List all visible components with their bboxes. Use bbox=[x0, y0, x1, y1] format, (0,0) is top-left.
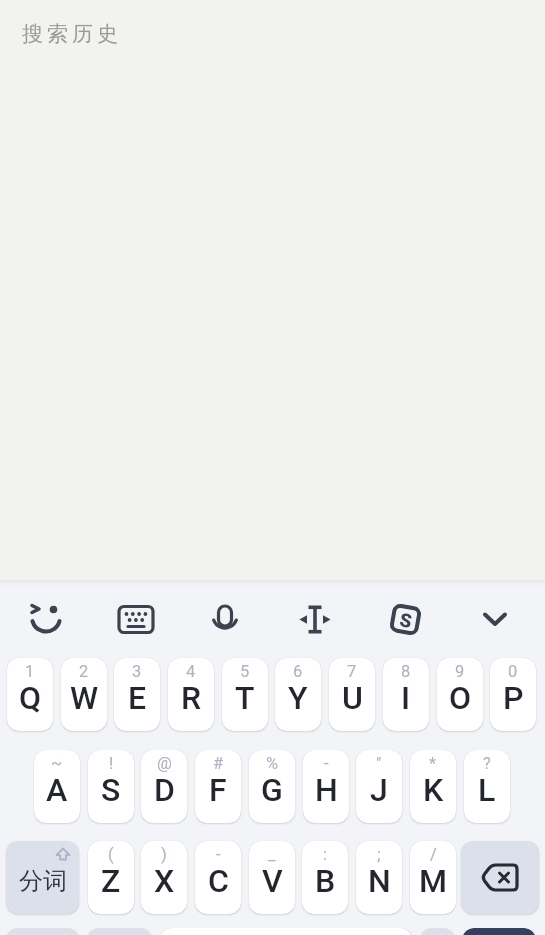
staticText: ? bbox=[483, 754, 491, 773]
button[interactable]: 2 bbox=[61, 658, 107, 731]
button[interactable] bbox=[471, 595, 519, 643]
button[interactable]: 5 bbox=[222, 658, 268, 731]
staticText: # bbox=[213, 754, 224, 773]
button[interactable]: ) bbox=[141, 841, 187, 914]
staticText: 2 bbox=[79, 662, 89, 681]
staticText: @ bbox=[157, 754, 172, 773]
staticText: 3 bbox=[132, 662, 142, 681]
button[interactable] bbox=[87, 928, 152, 935]
button[interactable]: 3 bbox=[114, 658, 160, 731]
staticText: I bbox=[401, 679, 411, 717]
staticText: M bbox=[419, 862, 448, 900]
staticText: Z bbox=[101, 862, 121, 900]
staticText: / bbox=[430, 845, 437, 864]
staticText: 5 bbox=[240, 662, 250, 681]
button[interactable]: S bbox=[381, 595, 429, 643]
button[interactable] bbox=[420, 928, 455, 935]
staticText: 搜索历史 bbox=[20, 21, 120, 47]
button[interactable] bbox=[6, 928, 79, 935]
staticText: ( bbox=[108, 845, 114, 864]
staticText: " bbox=[376, 754, 382, 773]
staticText: P bbox=[503, 679, 524, 717]
button[interactable]: # bbox=[195, 750, 241, 823]
staticText: : bbox=[323, 845, 327, 864]
staticText: K bbox=[423, 771, 444, 809]
staticText: _ bbox=[268, 845, 276, 864]
button[interactable]: 4 bbox=[168, 658, 214, 731]
button[interactable]: : bbox=[302, 841, 348, 914]
staticText: 1 bbox=[25, 662, 35, 681]
staticText: G bbox=[261, 771, 283, 809]
staticText: H bbox=[315, 771, 338, 809]
button[interactable]: ( bbox=[88, 841, 134, 914]
staticText: D bbox=[154, 771, 175, 809]
staticText: 6 bbox=[293, 662, 303, 681]
staticText: C bbox=[208, 862, 229, 900]
staticText: V bbox=[262, 862, 283, 900]
staticText: N bbox=[368, 862, 391, 900]
staticText: Q bbox=[19, 679, 42, 717]
staticText: ! bbox=[109, 754, 114, 773]
staticText: - bbox=[216, 845, 221, 864]
button[interactable]: 分词 bbox=[6, 841, 79, 914]
staticText: A bbox=[46, 771, 68, 809]
button[interactable]: ~ bbox=[34, 750, 80, 823]
staticText: E bbox=[128, 679, 147, 717]
staticText: S bbox=[101, 771, 121, 809]
button[interactable] bbox=[112, 595, 160, 643]
staticText: ~ bbox=[51, 754, 63, 773]
button[interactable]: * bbox=[410, 750, 456, 823]
button[interactable]: " bbox=[356, 750, 402, 823]
staticText: ) bbox=[161, 845, 167, 864]
button[interactable]: _ bbox=[249, 841, 295, 914]
staticText: X bbox=[154, 862, 175, 900]
button[interactable]: ; bbox=[356, 841, 402, 914]
staticText: R bbox=[181, 679, 201, 717]
staticText: Y bbox=[288, 679, 308, 717]
button[interactable] bbox=[22, 595, 70, 643]
staticText: O bbox=[449, 679, 472, 717]
staticText: 7 bbox=[347, 662, 357, 681]
button[interactable] bbox=[461, 841, 539, 914]
staticText: J bbox=[370, 771, 388, 809]
button[interactable] bbox=[201, 595, 249, 643]
button[interactable]: ! bbox=[88, 750, 134, 823]
button[interactable]: 6 bbox=[275, 658, 321, 731]
button[interactable]: 0 bbox=[490, 658, 536, 731]
button[interactable]: - bbox=[195, 841, 241, 914]
staticText: L bbox=[478, 771, 496, 809]
button[interactable]: 9 bbox=[437, 658, 483, 731]
button[interactable]: 7 bbox=[329, 658, 375, 731]
staticText: B bbox=[315, 862, 336, 900]
button[interactable]: 1 bbox=[7, 658, 53, 731]
staticText: ; bbox=[377, 845, 381, 864]
button[interactable]: % bbox=[249, 750, 295, 823]
button[interactable]: @ bbox=[141, 750, 187, 823]
button[interactable] bbox=[291, 595, 339, 643]
staticText: - bbox=[324, 754, 329, 773]
staticText: 0 bbox=[508, 662, 518, 681]
staticText: T bbox=[235, 679, 255, 717]
button[interactable]: - bbox=[303, 750, 349, 823]
button[interactable] bbox=[462, 928, 536, 935]
staticText: 4 bbox=[186, 662, 196, 681]
staticText: S bbox=[398, 608, 414, 632]
staticText: * bbox=[429, 754, 437, 773]
button[interactable]: 8 bbox=[383, 658, 429, 731]
staticText: 8 bbox=[401, 662, 411, 681]
button[interactable] bbox=[160, 928, 412, 935]
button[interactable]: / bbox=[410, 841, 456, 914]
button[interactable]: ? bbox=[464, 750, 510, 823]
staticText: 9 bbox=[455, 662, 465, 681]
staticText: % bbox=[266, 754, 279, 773]
staticText: W bbox=[70, 679, 99, 717]
staticText: F bbox=[209, 771, 227, 809]
staticText: U bbox=[342, 679, 363, 717]
staticText: 分词 bbox=[19, 866, 67, 896]
